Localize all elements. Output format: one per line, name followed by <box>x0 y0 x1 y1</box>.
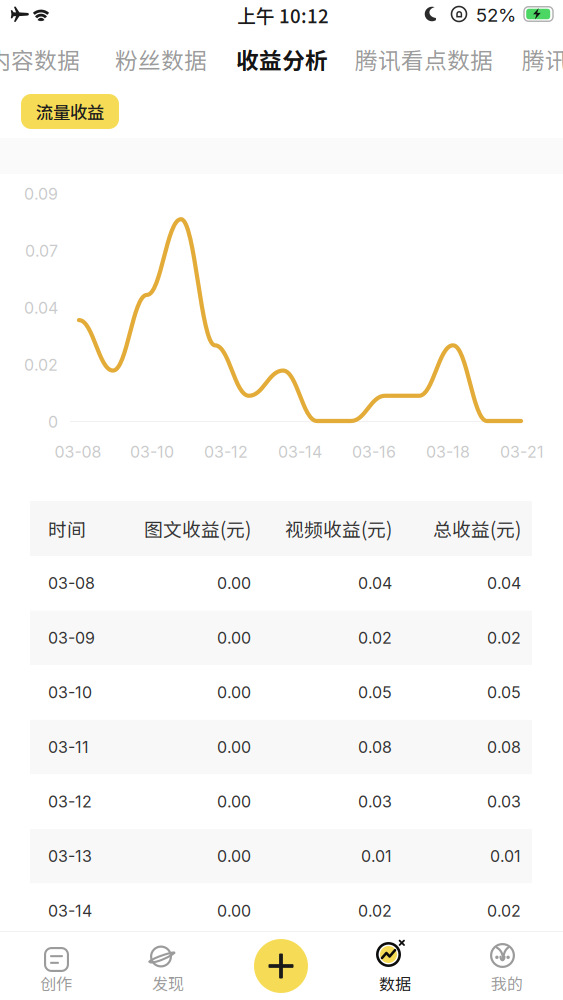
staticText: 0.04 <box>24 298 58 318</box>
staticText: 0.08 <box>487 737 521 757</box>
staticText: 数据 <box>379 971 411 995</box>
button[interactable]: 我的 <box>451 932 563 1000</box>
button[interactable]: 腾讯 <box>522 36 563 82</box>
staticText: 0.03 <box>487 792 521 811</box>
staticText: 0.07 <box>25 241 58 261</box>
staticText: 0.02 <box>358 628 392 648</box>
button[interactable]: 发布 <box>224 932 339 1000</box>
staticText: 03-14 <box>278 442 322 462</box>
staticText: 03-10 <box>48 683 92 702</box>
button[interactable]: 粉丝数据 <box>115 36 207 82</box>
staticText: 0.01 <box>490 847 521 866</box>
staticText: 时间 <box>48 515 86 542</box>
staticText: 03-08 <box>48 574 95 593</box>
staticText: 上午 10:12 <box>237 1 329 28</box>
button[interactable]: 数据 <box>339 932 451 1000</box>
staticText: 总收益(元) <box>433 515 521 542</box>
button[interactable]: 流量收益 <box>21 94 119 129</box>
staticText: 0.00 <box>217 683 251 702</box>
staticText: 52% <box>476 4 516 26</box>
staticText: 0.05 <box>358 683 392 702</box>
staticText: 0.00 <box>217 737 251 757</box>
staticText: 0.02 <box>487 628 521 648</box>
staticText: 0 <box>48 412 58 432</box>
button[interactable]: 创作 <box>0 932 112 1000</box>
staticText: 发现 <box>152 971 184 995</box>
staticText: 0.00 <box>217 628 251 648</box>
staticText: 0.09 <box>24 184 58 204</box>
staticText: 03-12 <box>204 442 248 462</box>
staticText: 创作 <box>40 971 72 995</box>
button[interactable]: 发现 <box>112 932 224 1000</box>
staticText: 03-16 <box>352 442 396 462</box>
staticText: 03-21 <box>500 442 544 462</box>
staticText: 0.05 <box>487 683 521 702</box>
staticText: 03-18 <box>426 442 470 462</box>
staticText: 0.04 <box>358 574 392 593</box>
staticText: 03-13 <box>48 847 92 866</box>
button[interactable]: 内容数据 <box>0 36 80 82</box>
staticText: 视频收益(元) <box>285 515 392 542</box>
staticText: 03-11 <box>48 737 89 757</box>
staticText: 0.02 <box>24 355 58 375</box>
staticText: 0.01 <box>361 847 392 866</box>
staticText: 0.04 <box>487 574 521 593</box>
button[interactable]: 收益分析 <box>236 36 328 82</box>
staticText: 腾讯看点数据 <box>355 43 493 75</box>
staticText: 03-10 <box>130 442 174 462</box>
staticText: 03-09 <box>48 628 95 648</box>
button[interactable]: 腾讯看点数据 <box>355 36 495 82</box>
staticText: 0.00 <box>217 792 251 811</box>
staticText: 流量收益 <box>36 99 104 124</box>
staticText: 腾讯 <box>522 43 563 75</box>
staticText: 0.00 <box>217 847 251 866</box>
staticText: 0.02 <box>487 901 521 921</box>
staticText: 03-12 <box>48 792 92 811</box>
staticText: 内容数据 <box>0 43 80 75</box>
staticText: 收益分析 <box>236 43 328 75</box>
staticText: 0.02 <box>358 901 392 921</box>
staticText: 0.00 <box>217 901 251 921</box>
staticText: 03-14 <box>48 901 92 921</box>
staticText: 0.08 <box>358 737 392 757</box>
staticText: 0.03 <box>358 792 392 811</box>
staticText: 图文收益(元) <box>144 515 251 542</box>
staticText: 我的 <box>491 971 523 995</box>
staticText: 粉丝数据 <box>115 43 207 75</box>
staticText: 0.00 <box>217 574 251 593</box>
staticText: 03-08 <box>54 442 101 462</box>
